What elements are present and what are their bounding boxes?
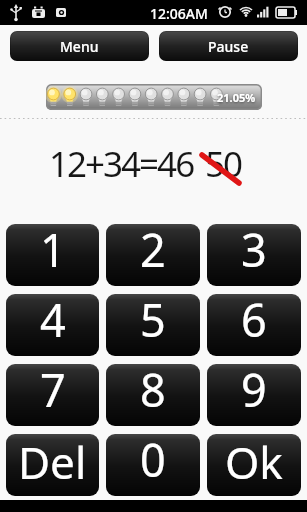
staticText: 5 <box>140 294 166 350</box>
staticText: Del <box>18 434 87 492</box>
button[interactable]: 3 <box>207 224 301 286</box>
staticText: 3 <box>241 224 267 280</box>
button[interactable]: 7 <box>6 364 99 426</box>
button[interactable]: 5 <box>106 294 200 356</box>
staticText: Menu <box>60 37 99 56</box>
staticText: 8 <box>140 364 166 420</box>
button[interactable]: Pause <box>159 31 298 61</box>
staticText: 2 <box>140 224 166 280</box>
button[interactable]: 0 <box>106 434 200 496</box>
button[interactable]: 1 <box>6 224 99 286</box>
button[interactable]: 6 <box>207 294 301 356</box>
button[interactable]: 2 <box>106 224 200 286</box>
staticText: 21.05% <box>217 90 256 105</box>
button[interactable]: 4 <box>6 294 99 356</box>
button[interactable]: 9 <box>207 364 301 426</box>
staticText: 4 <box>40 294 66 350</box>
staticText: 50 <box>205 140 242 188</box>
button[interactable]: Ok <box>207 434 301 496</box>
staticText: Ok <box>225 434 283 492</box>
staticText: 9 <box>241 364 267 420</box>
staticText: Pause <box>208 37 249 56</box>
button[interactable]: Menu <box>10 31 149 61</box>
staticText: 12:06AM <box>150 4 208 23</box>
staticText: 6 <box>241 294 267 350</box>
staticText: 0 <box>140 434 166 490</box>
staticText: 1 <box>40 224 66 280</box>
staticText: 12+34=46 <box>49 140 194 188</box>
button[interactable]: Del <box>6 434 99 496</box>
button[interactable]: 8 <box>106 364 200 426</box>
staticText: 7 <box>40 364 66 420</box>
